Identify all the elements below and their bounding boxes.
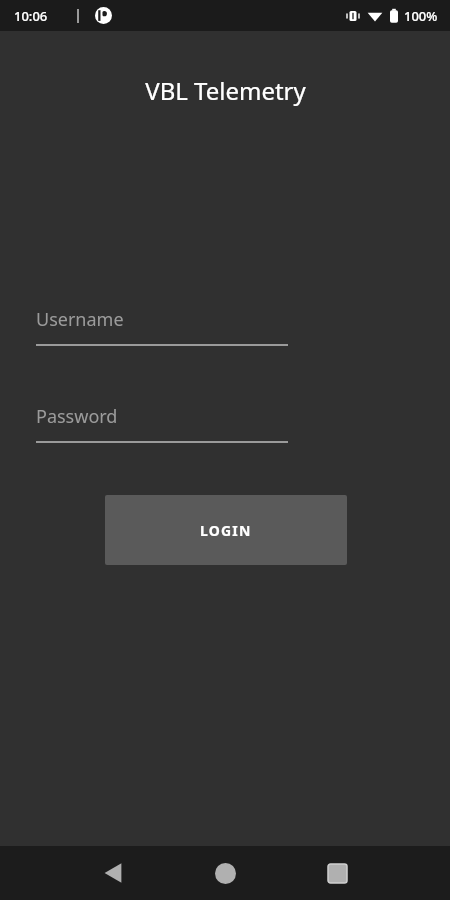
button[interactable]: Recent apps	[314, 850, 360, 896]
button[interactable]: Back	[90, 850, 136, 896]
staticText: 10:06	[14, 7, 48, 25]
staticText: VBL Telemetry	[145, 74, 306, 107]
staticText: LOGIN	[200, 521, 252, 540]
staticText: 100%	[404, 7, 438, 25]
staticText: Password	[36, 404, 118, 429]
button[interactable]: Home	[202, 850, 248, 896]
button[interactable]: LOGIN	[105, 495, 347, 565]
button[interactable]: Username	[36, 307, 288, 346]
staticText: Username	[36, 307, 124, 332]
button[interactable]: Password	[36, 404, 288, 443]
